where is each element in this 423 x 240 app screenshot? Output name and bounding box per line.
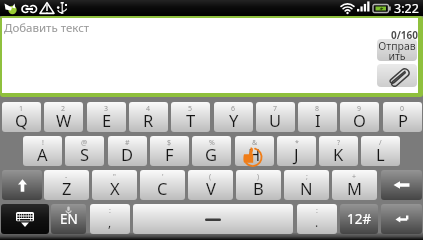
button[interactable]: $ — [150, 136, 189, 166]
staticText: ' — [162, 172, 164, 182]
button[interactable]: 5 — [171, 102, 210, 132]
staticText: 4 — [146, 104, 151, 114]
button[interactable]: # — [108, 136, 147, 166]
button[interactable]: 12# — [340, 204, 378, 234]
button[interactable]: Enter — [381, 204, 422, 234]
staticText: Y — [229, 109, 239, 131]
staticText: ! — [42, 138, 44, 148]
button[interactable]: Backspace — [381, 170, 422, 200]
button[interactable]: 3 — [87, 102, 126, 132]
button[interactable]: ( — [188, 170, 233, 200]
staticText: 3:22 — [394, 0, 419, 16]
button[interactable]: 6 — [214, 102, 253, 132]
button[interactable]: EN — [51, 204, 86, 234]
staticText: EN — [60, 210, 78, 228]
button[interactable]: 7 — [256, 102, 295, 132]
staticText: ? — [337, 138, 341, 148]
staticText: 8 — [315, 104, 320, 114]
button[interactable]: ? — [319, 136, 358, 166]
staticText: ) — [257, 172, 260, 182]
staticText: - — [65, 172, 68, 182]
staticText: . — [315, 214, 319, 230]
staticText: & — [252, 138, 258, 148]
button[interactable]: @ — [65, 136, 104, 166]
button[interactable]: - — [44, 170, 89, 200]
button[interactable]: & — [235, 136, 274, 166]
button[interactable]: % — [192, 136, 231, 166]
staticText: R — [143, 109, 154, 131]
staticText: 5 — [188, 104, 193, 114]
staticText: D — [121, 143, 134, 165]
staticText: O — [353, 109, 366, 131]
staticText: , — [108, 214, 112, 230]
staticText: E — [102, 109, 112, 131]
staticText: J — [294, 143, 299, 165]
button[interactable]: 2 — [44, 102, 83, 132]
button[interactable]: Attach file — [377, 64, 417, 87]
button[interactable]: ! — [23, 136, 62, 166]
staticText: 0 — [400, 104, 405, 114]
staticText: S — [80, 143, 90, 165]
staticText: Отправить — [377, 39, 417, 61]
staticText: Z — [62, 177, 72, 199]
staticText: N — [300, 177, 313, 199]
button[interactable]: ; — [284, 170, 329, 200]
staticText: : — [316, 206, 318, 216]
button[interactable]: / — [361, 136, 400, 166]
staticText: % — [209, 138, 215, 148]
button[interactable]: 1 — [2, 102, 41, 132]
staticText: W — [56, 109, 72, 131]
staticText: M — [347, 177, 362, 199]
button[interactable]: Shift — [2, 170, 42, 200]
staticText: 0/160 — [391, 28, 419, 42]
staticText: $ — [167, 138, 172, 148]
staticText: ( — [209, 172, 212, 182]
staticText: I — [315, 109, 321, 131]
button[interactable]: * — [277, 136, 316, 166]
button[interactable]: 9 — [340, 102, 379, 132]
staticText: P — [398, 109, 408, 131]
button[interactable]: 4 — [129, 102, 168, 132]
staticText: 7 — [273, 104, 278, 114]
staticText: Q — [15, 109, 28, 131]
staticText: A — [37, 143, 48, 165]
staticText: G — [205, 143, 218, 165]
staticText: 6 — [231, 104, 236, 114]
staticText: U — [269, 109, 282, 131]
staticText: H — [248, 143, 261, 165]
staticText: + — [352, 172, 357, 182]
staticText: @ — [81, 138, 88, 148]
staticText: 3 — [104, 104, 109, 114]
button[interactable]: + — [332, 170, 377, 200]
staticText: X — [110, 177, 120, 199]
staticText: # — [125, 138, 130, 148]
staticText: T — [186, 109, 196, 131]
button[interactable]: ' — [140, 170, 185, 200]
staticText: / — [379, 138, 382, 148]
staticText: 2 — [61, 104, 66, 114]
button[interactable]: " — [92, 170, 137, 200]
staticText: Добавить текст — [4, 20, 90, 36]
staticText: 1 — [19, 104, 24, 114]
button[interactable]: Space — [133, 204, 293, 234]
button[interactable]: 8 — [298, 102, 337, 132]
button[interactable]: : — [90, 204, 130, 234]
staticText: V — [206, 177, 216, 199]
staticText: 12# — [347, 210, 372, 228]
staticText: ; — [306, 172, 308, 182]
staticText: K — [333, 143, 344, 165]
button[interactable]: : — [297, 204, 337, 234]
button[interactable]: ) — [236, 170, 281, 200]
staticText: L — [376, 143, 385, 165]
staticText: " — [113, 172, 116, 182]
staticText: 9 — [357, 104, 362, 114]
button[interactable]: Hide keyboard — [1, 204, 49, 234]
staticText: F — [165, 143, 174, 165]
staticText: : — [109, 206, 111, 216]
staticText: B — [253, 177, 264, 199]
button[interactable]: Отправить — [377, 39, 417, 61]
staticText: C — [157, 177, 168, 199]
staticText: * — [295, 138, 299, 148]
button[interactable]: 0 — [383, 102, 422, 132]
